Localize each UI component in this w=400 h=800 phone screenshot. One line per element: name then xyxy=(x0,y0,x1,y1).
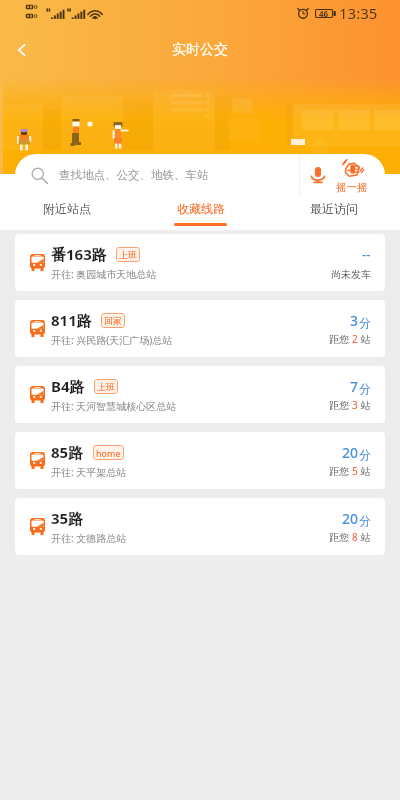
staticText: 811路 xyxy=(51,310,92,330)
staticText: 回家 xyxy=(104,315,122,326)
staticText: 开往: 文德路总站 xyxy=(51,531,127,545)
staticText: 85路 xyxy=(51,442,84,462)
staticText: 上班 xyxy=(119,249,137,260)
button[interactable]: 最近访问 xyxy=(267,198,400,230)
staticText: 收藏线路 xyxy=(177,201,225,216)
staticText: 摇一摇 xyxy=(336,181,368,194)
button[interactable]: 查找地点、公交、地铁、车站 xyxy=(15,154,299,196)
staticText: 距您 xyxy=(329,332,352,346)
staticText: 分 xyxy=(359,381,371,396)
staticText: 7 xyxy=(350,377,359,396)
staticText: 5 xyxy=(352,464,358,478)
staticText: 2 xyxy=(352,332,358,346)
button[interactable]: 35路 xyxy=(15,498,385,555)
button[interactable]: Back xyxy=(0,28,44,72)
staticText: 分 xyxy=(359,513,371,528)
staticText: 距您 xyxy=(329,530,352,544)
staticText: 46 xyxy=(319,8,329,19)
staticText: 最近访问 xyxy=(310,201,358,216)
staticText: 开往: 兴民路(天汇广场)总站 xyxy=(51,333,173,347)
staticText: 站 xyxy=(358,464,371,478)
staticText: 开往: 天河智慧城核心区总站 xyxy=(51,399,177,413)
staticText: 上班 xyxy=(97,381,115,392)
staticText: 查找地点、公交、地铁、车站 xyxy=(59,168,209,182)
staticText: 8 xyxy=(352,530,358,544)
button[interactable]: 摇一摇 xyxy=(331,154,385,196)
staticText: 尚未发车 xyxy=(331,268,371,281)
staticText: 距您 xyxy=(329,464,352,478)
staticText: 实时公交 xyxy=(172,41,228,59)
staticText: 距您 xyxy=(329,398,352,412)
staticText: 番163路 xyxy=(51,244,107,264)
staticText: 3 xyxy=(350,311,359,330)
staticText: 开往: 天平架总站 xyxy=(51,465,127,479)
staticText: 站 xyxy=(358,530,371,544)
button[interactable]: Voice search xyxy=(300,154,331,196)
staticText: B4路 xyxy=(51,376,85,396)
staticText: 附近站点 xyxy=(43,201,91,216)
staticText: 20 xyxy=(342,443,359,462)
staticText: 开往: 奥园城市天地总站 xyxy=(51,267,157,281)
button[interactable]: B4路 xyxy=(15,366,385,423)
staticText: 35路 xyxy=(51,508,84,528)
staticText: 20 xyxy=(342,509,359,528)
staticText: -- xyxy=(362,245,371,263)
staticText: 13:35 xyxy=(339,3,378,23)
button[interactable]: 附近站点 xyxy=(0,198,134,230)
staticText: 分 xyxy=(359,447,371,462)
button[interactable]: 收藏线路 xyxy=(134,198,267,230)
button[interactable]: 85路 xyxy=(15,432,385,489)
staticText: 分 xyxy=(359,315,371,330)
staticText: 站 xyxy=(358,398,371,412)
button[interactable]: 811路 xyxy=(15,300,385,357)
button[interactable]: 番163路 xyxy=(15,234,385,291)
staticText: home xyxy=(96,447,121,459)
staticText: 3 xyxy=(352,398,358,412)
staticText: 站 xyxy=(358,332,371,346)
